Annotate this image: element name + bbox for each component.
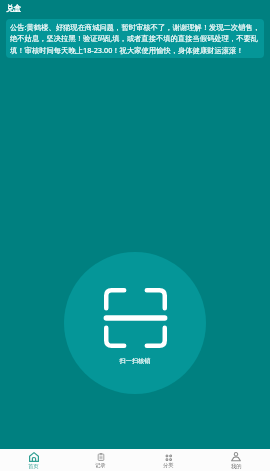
button[interactable]: 记录 [67, 449, 134, 471]
button[interactable]: 首页 [0, 449, 67, 471]
button[interactable]: 扫一扫核销 [64, 252, 206, 394]
staticText: 首页 [28, 463, 39, 470]
button[interactable]: 分类 [134, 449, 202, 471]
staticText: 公告:黄鹤楼、好猫现在商城问题，暂时审核不了，谢谢理解！发现二次销售，绝不姑息，… [10, 22, 262, 55]
button[interactable]: 公告:黄鹤楼、好猫现在商城问题，暂时审核不了，谢谢理解！发现二次销售，绝不姑息，… [6, 19, 264, 58]
staticText: 扫一扫核销 [64, 357, 206, 365]
staticText: 我的 [231, 463, 242, 470]
staticText: 兑盒 [6, 4, 22, 14]
staticText: 分类 [163, 462, 174, 469]
staticText: 记录 [95, 462, 106, 469]
button[interactable]: 我的 [202, 449, 270, 471]
